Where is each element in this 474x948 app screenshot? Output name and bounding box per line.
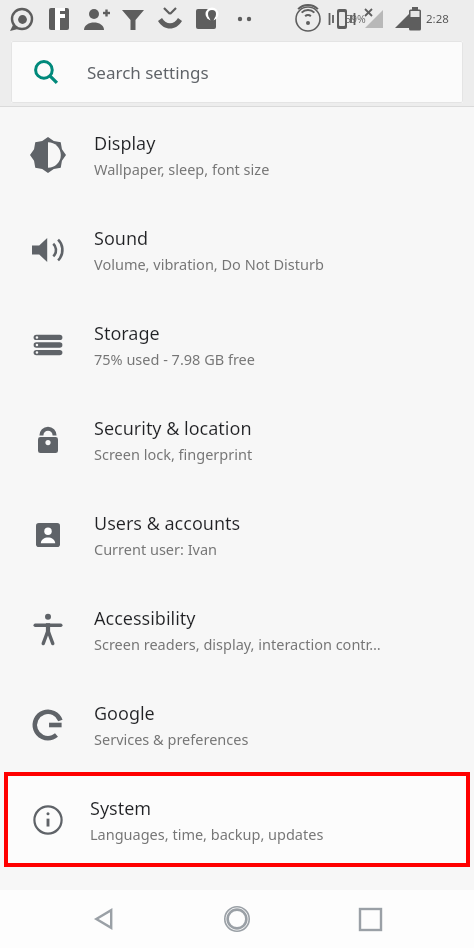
staticText: Users & accounts	[94, 511, 241, 536]
button[interactable]: System	[4, 772, 470, 867]
staticText: Volume, vibration, Do Not Disturb	[94, 254, 324, 274]
staticText: Security & location	[94, 416, 252, 441]
staticText: Languages, time, backup, updates	[90, 824, 324, 844]
button[interactable]: Display	[0, 107, 474, 202]
staticText: Google	[94, 701, 155, 726]
button[interactable]: Back	[75, 890, 133, 948]
staticText: Current user: Ivan	[94, 539, 218, 559]
button[interactable]: Storage	[0, 297, 474, 392]
button[interactable]: Recent apps	[341, 890, 399, 948]
staticText: Display	[94, 131, 156, 156]
staticText: Search settings	[87, 61, 209, 84]
button[interactable]: Home	[208, 890, 266, 948]
button[interactable]: Google	[0, 677, 474, 772]
button[interactable]: Sound	[0, 202, 474, 297]
staticText: System	[90, 796, 152, 821]
button[interactable]: Search settings	[11, 41, 463, 103]
staticText: 59%	[345, 12, 366, 26]
staticText: Screen readers, display, interaction con…	[94, 634, 381, 654]
staticText: Wallpaper, sleep, font size	[94, 159, 270, 179]
staticText: Sound	[94, 226, 149, 251]
staticText: Accessibility	[94, 606, 196, 631]
staticText: 75% used - 7.98 GB free	[94, 349, 255, 369]
staticText: 2:28	[426, 11, 449, 27]
button[interactable]: Security & location	[0, 392, 474, 487]
staticText: Screen lock, fingerprint	[94, 444, 253, 464]
button[interactable]: Users & accounts	[0, 487, 474, 582]
staticText: Storage	[94, 321, 160, 346]
button[interactable]: Accessibility	[0, 582, 474, 677]
staticText: Services & preferences	[94, 729, 249, 749]
